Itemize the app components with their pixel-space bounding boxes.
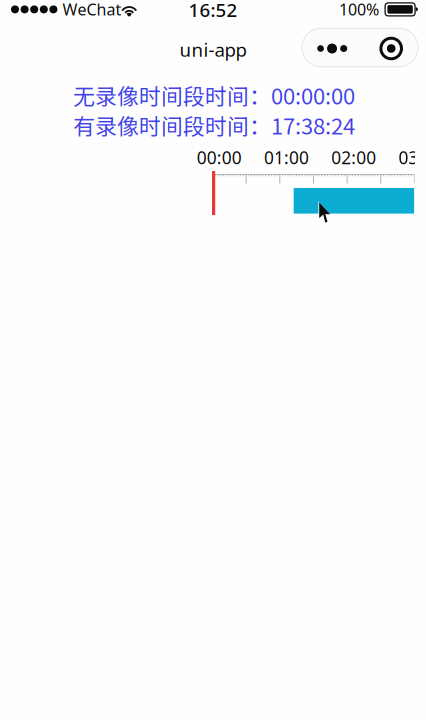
staticText: 无录像时间段时间：00:00:00: [73, 79, 355, 111]
staticText: 有录像时间段时间：17:38:24: [73, 109, 355, 141]
staticText: 100%: [339, 0, 379, 20]
staticText: 01:00: [264, 146, 309, 169]
staticText: 02:00: [331, 146, 376, 169]
staticText: uni-app: [179, 37, 246, 62]
button[interactable]: Mini program menu: [302, 28, 418, 67]
staticText: 00:00: [197, 146, 242, 169]
staticText: WeChat: [62, 0, 121, 20]
staticText: 16:52: [188, 0, 237, 22]
staticText: 03:00: [399, 146, 426, 169]
